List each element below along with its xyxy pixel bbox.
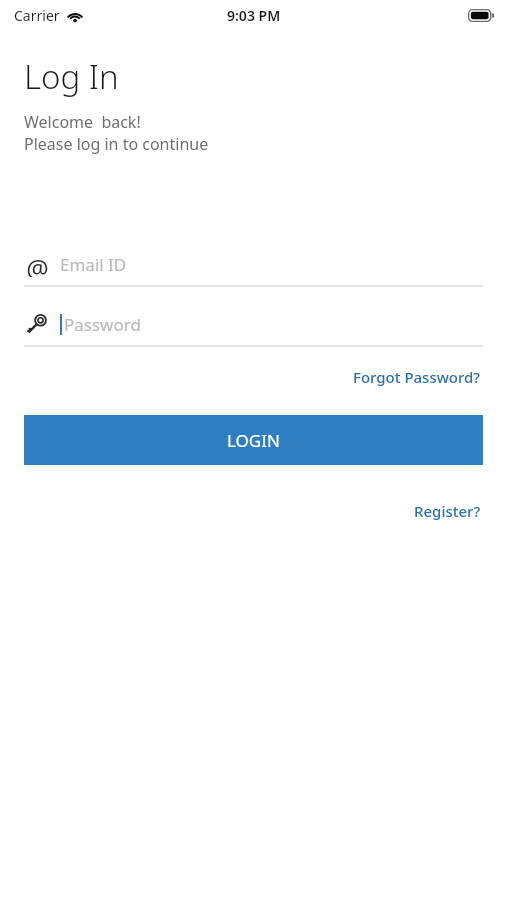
staticText: Carrier: [14, 6, 60, 25]
staticText: Log In: [24, 54, 119, 99]
button[interactable]: Forgot Password?: [351, 363, 483, 391]
button[interactable]: Password: [24, 307, 483, 347]
button[interactable]: LOGIN: [24, 415, 483, 465]
staticText: @: [26, 251, 49, 277]
button[interactable]: Email: [24, 247, 483, 287]
staticText: Please log in to continue: [24, 133, 209, 155]
other: Password: [24, 311, 50, 337]
staticText: 9:03 PM: [227, 6, 281, 25]
staticText: Welcome back!: [24, 111, 141, 133]
staticText: Forgot Password?: [353, 367, 481, 387]
staticText: Password: [64, 313, 141, 336]
staticText: LOGIN: [227, 429, 280, 452]
staticText: Email ID: [60, 253, 127, 276]
other: Email: [24, 251, 50, 277]
button[interactable]: Register?: [412, 497, 483, 525]
staticText: Register?: [414, 501, 481, 521]
